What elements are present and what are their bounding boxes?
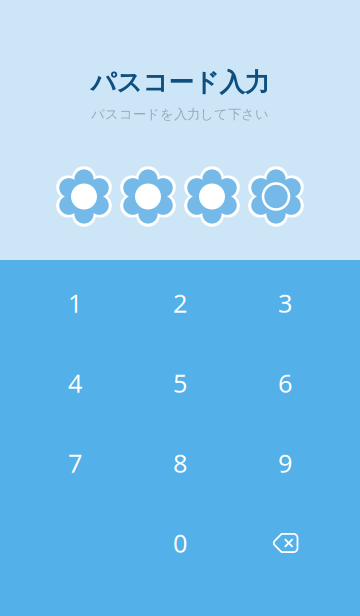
button[interactable]: 3: [232, 263, 337, 343]
button[interactable]: 2: [127, 263, 232, 343]
staticText: 5: [173, 366, 187, 400]
button[interactable]: 5: [127, 343, 232, 423]
button[interactable]: 0: [127, 503, 232, 583]
button[interactable]: 7: [22, 423, 127, 503]
staticText: 6: [278, 366, 292, 400]
staticText: 1: [68, 286, 82, 320]
staticText: 9: [278, 446, 292, 480]
button[interactable]: 4: [22, 343, 127, 423]
staticText: 0: [173, 526, 187, 560]
button[interactable]: Delete: [232, 503, 337, 583]
staticText: パスコードを入力して下さい: [91, 106, 269, 122]
button[interactable]: 6: [232, 343, 337, 423]
button[interactable]: 8: [127, 423, 232, 503]
staticText: 8: [173, 446, 187, 480]
button[interactable]: 9: [232, 423, 337, 503]
button[interactable]: 1: [22, 263, 127, 343]
staticText: 4: [68, 366, 82, 400]
staticText: 2: [173, 286, 187, 320]
staticText: パスコード入力: [90, 67, 269, 98]
staticText: 3: [278, 286, 292, 320]
staticText: 7: [68, 446, 82, 480]
